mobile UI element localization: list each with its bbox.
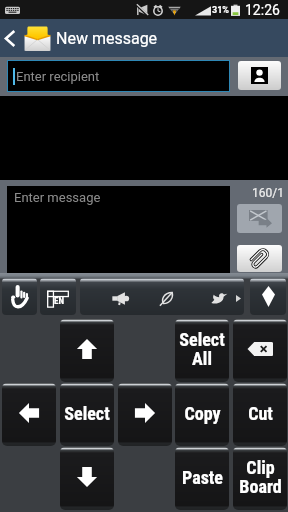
staticText: Copy — [184, 403, 221, 424]
staticText: Enter message — [14, 190, 101, 205]
button[interactable]: More input options — [80, 278, 244, 315]
button[interactable]: Enter message — [7, 186, 230, 273]
button[interactable]: Move left — [2, 383, 56, 446]
staticText: New message — [56, 29, 158, 48]
button[interactable]: Enter recipient — [7, 60, 230, 92]
button[interactable]: Cut — [233, 383, 287, 446]
button[interactable]: Handwriting — [2, 278, 37, 315]
button[interactable]: Send message — [237, 204, 282, 233]
button[interactable]: Hide keyboard — [250, 278, 286, 315]
staticText: EN — [54, 296, 64, 307]
staticText: Enter recipient — [16, 69, 100, 84]
staticText: Select All — [179, 329, 225, 369]
button[interactable]: Delete — [233, 319, 287, 382]
button[interactable]: Copy — [175, 383, 229, 446]
button[interactable]: Select — [60, 383, 114, 446]
staticText: Clip Board — [239, 457, 282, 497]
staticText: Cut — [248, 403, 273, 424]
button[interactable]: Choose contact — [238, 61, 281, 90]
button[interactable]: Move right — [118, 383, 172, 446]
button[interactable]: Move down — [60, 447, 114, 510]
button[interactable]: Attach file — [237, 245, 282, 272]
staticText: Paste — [182, 467, 223, 488]
button[interactable]: Clip Board — [233, 447, 287, 510]
button[interactable]: Change language — [40, 278, 76, 315]
staticText: Select — [64, 403, 110, 424]
staticText: 160/1 — [252, 186, 284, 200]
button[interactable]: Move up — [60, 319, 114, 382]
staticText: 31% — [212, 5, 229, 16]
staticText: 12:26 — [245, 2, 280, 18]
button[interactable]: Paste — [175, 447, 229, 510]
button[interactable]: Select All — [175, 319, 229, 382]
button[interactable]: New message — [0, 19, 288, 57]
